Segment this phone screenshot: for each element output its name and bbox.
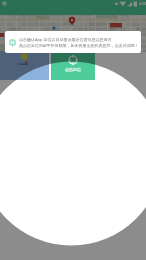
staticText: 4:30 [139, 1, 146, 7]
button[interactable]: Locate me [51, 51, 95, 80]
staticText: 点击定位 [65, 67, 81, 72]
button[interactable]: Recent app [0, 51, 49, 80]
button[interactable]: 点击确认App 定位以自动显示最近位置信息以您是否 高点击定位的APP开放权限，… [5, 31, 141, 53]
staticText: 点击确认App 定位以自动显示最近位置信息以您是否 高点击定位的APP开放权限，… [19, 37, 141, 48]
